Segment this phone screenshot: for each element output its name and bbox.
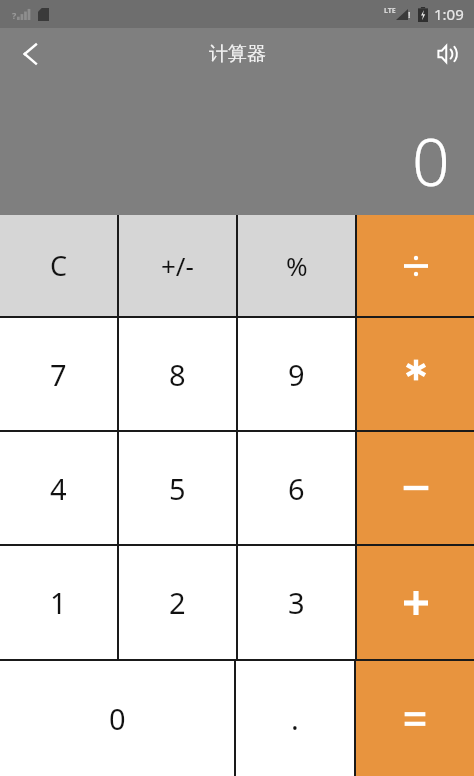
staticText: % bbox=[286, 248, 308, 283]
button[interactable]: Sound bbox=[414, 28, 474, 80]
staticText: C bbox=[50, 247, 68, 284]
button[interactable]: Plus bbox=[357, 546, 474, 659]
staticText: 5 bbox=[169, 469, 186, 508]
button[interactable]: +/- bbox=[119, 215, 236, 316]
button[interactable]: 4 bbox=[0, 432, 117, 544]
staticText: 7 bbox=[50, 355, 67, 394]
button[interactable]: 2 bbox=[119, 546, 236, 659]
staticText: ! bbox=[408, 8, 411, 20]
button[interactable]: 8 bbox=[119, 318, 236, 430]
button[interactable]: 5 bbox=[119, 432, 236, 544]
button[interactable]: 7 bbox=[0, 318, 117, 430]
button[interactable]: Equals bbox=[356, 661, 474, 776]
staticText: ? bbox=[12, 9, 17, 21]
staticText: 1 bbox=[50, 583, 67, 622]
staticText: 0 bbox=[412, 115, 450, 205]
staticText: 计算器 bbox=[209, 42, 266, 66]
button[interactable]: Minus bbox=[357, 432, 474, 544]
staticText: 8 bbox=[169, 355, 186, 394]
button[interactable]: Multiply bbox=[357, 318, 474, 430]
button[interactable]: . bbox=[236, 661, 354, 776]
staticText: 6 bbox=[288, 469, 305, 508]
button[interactable]: 6 bbox=[238, 432, 355, 544]
staticText: 9 bbox=[288, 355, 305, 394]
button[interactable]: Divide bbox=[357, 215, 474, 316]
button[interactable]: % bbox=[238, 215, 355, 316]
staticText: LTE bbox=[384, 6, 396, 16]
staticText: 2 bbox=[169, 583, 186, 622]
staticText: . bbox=[291, 699, 299, 738]
staticText: +/- bbox=[161, 248, 194, 283]
button[interactable]: 0 bbox=[0, 661, 234, 776]
staticText: 3 bbox=[288, 583, 305, 622]
button[interactable]: C bbox=[0, 215, 117, 316]
staticText: 0 bbox=[109, 699, 126, 738]
button[interactable]: Back bbox=[0, 28, 60, 80]
button[interactable]: 1 bbox=[0, 546, 117, 659]
staticText: 1:09 bbox=[434, 4, 464, 24]
button[interactable]: 9 bbox=[238, 318, 355, 430]
staticText: 4 bbox=[50, 469, 67, 508]
button[interactable]: 3 bbox=[238, 546, 355, 659]
